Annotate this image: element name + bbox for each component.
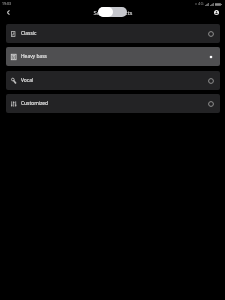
staticText: 4G bbox=[198, 1, 204, 7]
button[interactable]: Vocal bbox=[6, 71, 220, 90]
button[interactable]: Classic bbox=[6, 24, 220, 43]
staticText: Heavy bass bbox=[21, 53, 47, 60]
button[interactable]: Back bbox=[2, 6, 15, 19]
staticText: Vocal bbox=[21, 77, 34, 84]
staticText: Classic bbox=[21, 30, 37, 37]
button[interactable]: Account bbox=[211, 7, 222, 18]
button[interactable]: Heavy bass bbox=[6, 47, 220, 66]
staticText: Sound effects bbox=[93, 8, 133, 16]
staticText: Customized bbox=[21, 100, 49, 107]
button[interactable]: Customized bbox=[6, 94, 220, 113]
staticText: 19:03 bbox=[2, 1, 11, 6]
